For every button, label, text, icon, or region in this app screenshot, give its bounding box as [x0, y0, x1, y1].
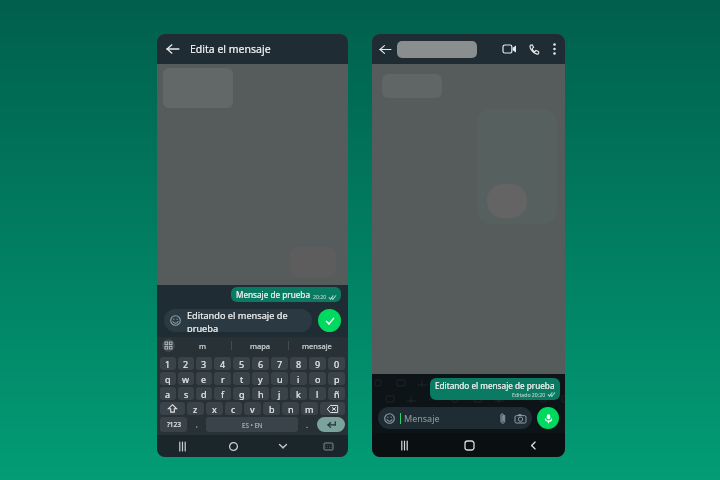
staticText: 0 — [334, 358, 340, 370]
button[interactable]: y — [252, 372, 269, 385]
button[interactable]: x — [206, 402, 223, 415]
button[interactable]: Edita el mensaje — [157, 34, 348, 64]
button[interactable]: mapa — [232, 337, 288, 354]
button[interactable]: Opciones de teclado — [162, 339, 175, 352]
button[interactable]: Mensaje — [378, 407, 532, 429]
button[interactable]: d — [196, 387, 212, 400]
button[interactable]: s — [178, 387, 194, 400]
button[interactable] — [320, 402, 345, 415]
button[interactable]: Inicio — [437, 433, 501, 457]
button[interactable]: a — [160, 387, 176, 400]
button[interactable]: Mensaje de prueba — [231, 287, 341, 302]
staticText: b — [269, 403, 275, 415]
staticText: p — [334, 373, 340, 385]
button[interactable]: w — [178, 372, 194, 385]
staticText: 2 — [183, 358, 189, 370]
button[interactable]: 9 — [309, 357, 326, 370]
button[interactable]: 8 — [290, 357, 307, 370]
button[interactable]: 5 — [233, 357, 250, 370]
staticText: d — [201, 388, 207, 400]
button[interactable]: k — [290, 387, 307, 400]
staticText: 9 — [315, 358, 321, 370]
button[interactable]: Grabar audio — [537, 407, 559, 429]
button[interactable]: o — [309, 372, 326, 385]
button[interactable]: Editando el mensaje de prueba — [430, 378, 560, 400]
staticText: 1 — [165, 358, 171, 370]
staticText: f — [221, 388, 225, 400]
staticText: mensaje — [302, 341, 332, 351]
button[interactable]: z — [187, 402, 204, 415]
staticText: Mensaje de prueba — [236, 289, 310, 300]
button[interactable]: 6 — [252, 357, 269, 370]
button[interactable]: Recientes — [157, 435, 208, 457]
button[interactable]: Atrás — [501, 433, 565, 457]
button[interactable]: p — [328, 372, 345, 385]
button[interactable]: 7 — [271, 357, 288, 370]
button[interactable]: ?123 — [160, 417, 187, 432]
staticText: , — [196, 420, 198, 430]
button[interactable]: ES • EN — [206, 417, 298, 432]
button[interactable]: m — [175, 337, 231, 354]
button[interactable]: Editando el mensaje de prueba — [164, 309, 312, 332]
button[interactable]: e — [196, 372, 212, 385]
staticText: u — [277, 373, 283, 385]
button[interactable]: Ocultar teclado — [258, 435, 308, 457]
staticText: s — [184, 388, 189, 400]
button[interactable]: t — [233, 372, 250, 385]
button[interactable]: Enter — [317, 417, 345, 432]
staticText: x — [212, 403, 217, 415]
button[interactable]: v — [244, 402, 261, 415]
staticText: v — [250, 403, 255, 415]
button[interactable]: Videollamada — [503, 44, 516, 54]
staticText: n — [288, 403, 294, 415]
button[interactable]: mensaje — [289, 337, 345, 354]
button[interactable]: q — [160, 372, 176, 385]
button[interactable]: . — [300, 417, 315, 432]
button[interactable]: Más opciones — [553, 43, 556, 55]
staticText: ?123 — [167, 420, 181, 429]
button[interactable]: m — [301, 402, 318, 415]
button[interactable]: n — [282, 402, 299, 415]
button[interactable]: u — [271, 372, 288, 385]
button[interactable]: Cambiar teclado — [308, 435, 348, 457]
staticText: 7 — [277, 358, 283, 370]
staticText: ñ — [334, 388, 340, 400]
button[interactable]: l — [309, 387, 326, 400]
staticText: Editado 20:20 — [512, 391, 546, 398]
button[interactable]: g — [233, 387, 250, 400]
button[interactable]: Llamar — [529, 44, 540, 55]
staticText: ES • EN — [242, 421, 263, 429]
button[interactable]: 1 — [160, 357, 176, 370]
button[interactable]: Inicio — [208, 435, 258, 457]
button[interactable]: Recientes — [372, 433, 437, 457]
button[interactable]: j — [271, 387, 288, 400]
button[interactable] — [160, 402, 185, 415]
button[interactable]: Guardar edición — [318, 309, 341, 332]
staticText: m — [199, 341, 207, 351]
button[interactable]: f — [214, 387, 231, 400]
staticText: w — [182, 373, 190, 385]
button[interactable]: 3 — [196, 357, 212, 370]
button[interactable]: b — [263, 402, 280, 415]
button[interactable]: Adjuntar — [500, 413, 506, 424]
button[interactable]: i — [290, 372, 307, 385]
button[interactable] — [397, 41, 477, 58]
button[interactable]: Atrás — [379, 43, 392, 56]
button[interactable]: 2 — [178, 357, 194, 370]
staticText: r — [221, 373, 225, 385]
button[interactable]: ñ — [328, 387, 345, 400]
staticText: 3 — [201, 358, 207, 370]
button[interactable]: 0 — [328, 357, 345, 370]
button[interactable]: , — [189, 417, 204, 432]
button[interactable]: r — [214, 372, 231, 385]
button[interactable]: Cámara — [515, 414, 526, 423]
button[interactable]: c — [225, 402, 242, 415]
staticText: Editando el mensaje de prueba — [187, 309, 312, 332]
button[interactable]: 4 — [214, 357, 231, 370]
staticText: l — [316, 388, 319, 400]
staticText: 4 — [220, 358, 226, 370]
staticText: a — [165, 388, 171, 400]
staticText: Edita el mensaje — [190, 42, 271, 56]
button[interactable]: h — [252, 387, 269, 400]
staticText: . — [306, 419, 309, 430]
